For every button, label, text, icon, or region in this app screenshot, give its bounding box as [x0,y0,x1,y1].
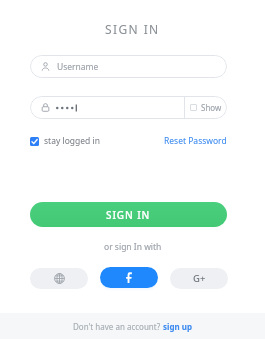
button[interactable] [30,96,184,119]
button[interactable]: Reset Password [164,135,227,147]
button[interactable]: Show [185,96,227,119]
staticText: SIGN IN [106,208,151,222]
button[interactable]: Username [30,55,227,78]
staticText: or sign In with [104,241,162,253]
staticText: Don't have an account? [73,321,163,332]
staticText: SIGN IN [105,21,160,37]
staticText: Show [201,102,222,113]
staticText: stay logged in [44,135,100,147]
staticText: Reset Password [164,135,227,147]
button[interactable]: SIGN IN [30,202,227,227]
staticText: Username [57,61,99,73]
staticText: sign up [163,321,192,332]
button[interactable]: Sign in with Facebook [100,267,158,288]
staticText: G+ [193,272,206,285]
button[interactable]: Don't have an account? [73,321,192,332]
button[interactable]: Sign in with web [30,268,88,289]
button[interactable]: Sign in with Google [170,268,228,289]
button[interactable]: stay logged in [30,135,104,147]
